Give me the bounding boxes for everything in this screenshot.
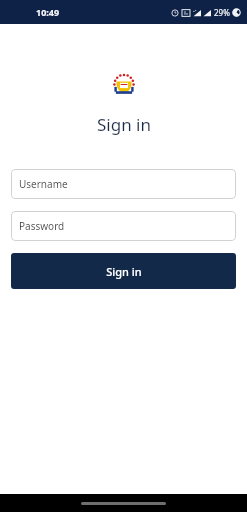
staticText: Sign in xyxy=(106,264,142,279)
staticText: Sign in xyxy=(97,113,151,136)
staticText: 29% xyxy=(214,7,230,18)
button[interactable]: Password xyxy=(11,211,236,241)
button[interactable]: Username xyxy=(11,169,236,199)
staticText: 10:49 xyxy=(36,6,60,18)
button[interactable]: Home gesture bar xyxy=(81,502,166,505)
staticText: Username xyxy=(19,177,68,191)
button[interactable]: Sign in xyxy=(11,253,236,289)
staticText: Password xyxy=(19,219,65,233)
